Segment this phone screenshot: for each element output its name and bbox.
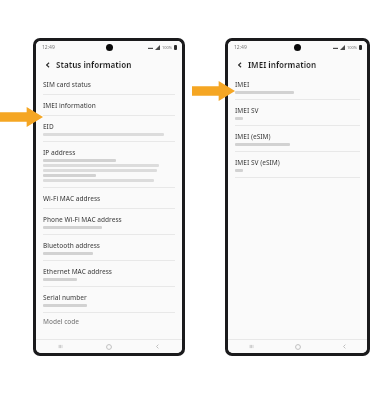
button[interactable]: Home	[84, 340, 133, 353]
button[interactable]: Back	[133, 340, 182, 353]
button[interactable]: IP address	[36, 142, 182, 187]
staticText: Phone Wi-Fi MAC address	[43, 215, 122, 224]
button[interactable]: Serial number	[36, 287, 182, 312]
staticText: 100%	[162, 45, 173, 50]
staticText: EID	[43, 122, 54, 131]
staticText: Status information	[56, 59, 132, 70]
staticText: IMEI information	[248, 59, 317, 70]
staticText: IMEI (eSIM)	[235, 132, 271, 141]
button[interactable]: Back	[234, 59, 245, 70]
staticText: IMEI	[235, 80, 250, 89]
staticText: 12:49	[42, 44, 55, 51]
button[interactable]: IMEI SV	[228, 100, 367, 125]
button[interactable]: Phone Wi-Fi MAC address	[36, 209, 182, 234]
staticText: Ethernet MAC address	[43, 267, 113, 276]
button[interactable]: IMEI (eSIM)	[228, 126, 367, 151]
staticText: IMEI SV (eSIM)	[235, 158, 280, 167]
staticText: Model code	[43, 317, 80, 326]
button[interactable]: Back	[321, 340, 367, 353]
button[interactable]: EID	[36, 116, 182, 141]
staticText: IP address	[43, 148, 76, 157]
button[interactable]: IMEI SV (eSIM)	[228, 152, 367, 177]
button[interactable]: Recents	[36, 340, 84, 353]
button[interactable]: SIM card status	[36, 74, 182, 94]
staticText: SIM card status	[43, 80, 91, 89]
staticText: IMEI SV	[235, 106, 259, 115]
button[interactable]: Recents	[228, 340, 275, 353]
button[interactable]: IMEI information	[36, 95, 182, 115]
button[interactable]: Back	[42, 59, 53, 70]
staticText: 12:49	[234, 44, 247, 51]
staticText: Serial number	[43, 293, 87, 302]
button[interactable]: IMEI	[228, 74, 367, 99]
button[interactable]: Wi-Fi MAC address	[36, 188, 182, 208]
staticText: Bluetooth address	[43, 241, 100, 250]
button[interactable]: Bluetooth address	[36, 235, 182, 260]
staticText: IMEI information	[43, 101, 96, 110]
staticText: Wi-Fi MAC address	[43, 194, 101, 203]
button[interactable]: Ethernet MAC address	[36, 261, 182, 286]
button[interactable]: Model code	[36, 313, 182, 326]
button[interactable]: Home	[275, 340, 321, 353]
staticText: 100%	[347, 45, 358, 50]
